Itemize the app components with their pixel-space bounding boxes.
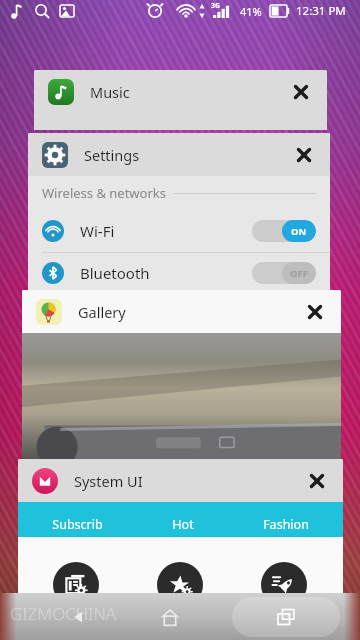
staticText: OFF — [290, 267, 308, 280]
button[interactable]: Close Settings — [284, 135, 324, 175]
staticText: 3G — [211, 1, 221, 11]
staticText: Bluetooth — [80, 263, 150, 283]
button[interactable]: System UI — [18, 459, 343, 640]
button[interactable]: Back — [56, 595, 100, 639]
button[interactable]: Close Music — [281, 72, 321, 112]
button[interactable]: Music — [34, 70, 327, 130]
staticText: Settings — [84, 145, 140, 165]
button[interactable]: Close Gallery — [295, 292, 335, 332]
button[interactable]: Hot — [172, 516, 194, 533]
button[interactable]: Close System UI — [297, 461, 337, 501]
staticText: System UI — [74, 471, 143, 491]
button[interactable]: Gallery — [22, 290, 341, 465]
staticText: 12:31 PM — [296, 3, 346, 19]
staticText: Gallery — [78, 302, 126, 322]
button[interactable]: Wi-Fi — [28, 210, 330, 252]
button[interactable]: Subscrib — [52, 516, 103, 533]
button[interactable]: Home — [148, 595, 192, 639]
button[interactable]: Recent apps — [232, 597, 340, 637]
staticText: GIZMOCHINA — [10, 602, 117, 625]
staticText: ON — [291, 225, 307, 238]
button[interactable]: Settings — [28, 133, 330, 293]
button[interactable]: Fashion — [263, 516, 309, 533]
staticText: 41% — [240, 4, 262, 19]
button[interactable]: Pinned app settings — [157, 562, 203, 608]
button[interactable]: App settings — [53, 562, 99, 608]
button[interactable]: Bluetooth — [28, 253, 330, 293]
staticText: Music — [90, 82, 130, 102]
button[interactable]: Boost memory — [261, 562, 307, 608]
staticText: Wi-Fi — [80, 221, 115, 241]
button[interactable]: OFF — [252, 262, 316, 284]
staticText: Wireless & networks — [42, 184, 166, 202]
button[interactable]: ON — [252, 220, 316, 242]
